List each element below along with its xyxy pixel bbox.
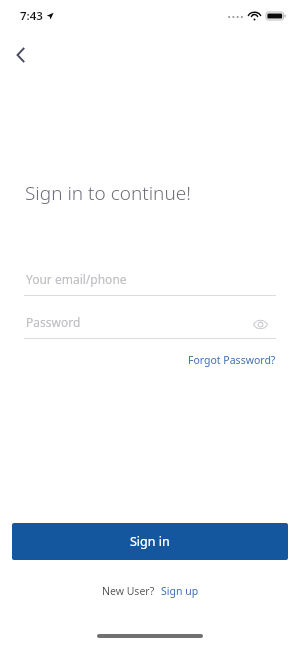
- button[interactable]: Back: [6, 40, 36, 70]
- staticText: 7:43: [20, 8, 43, 24]
- staticText: Sign in to continue!: [25, 180, 191, 206]
- button[interactable]: Sign up: [161, 584, 199, 598]
- button[interactable]: Password: [24, 309, 276, 339]
- staticText: Your email/phone: [26, 271, 127, 287]
- button[interactable]: Your email/phone: [24, 266, 276, 296]
- button[interactable]: Show password: [247, 311, 273, 337]
- staticText: Forgot Password?: [188, 353, 276, 367]
- staticText: Sign up: [161, 584, 199, 598]
- button[interactable]: Forgot Password?: [186, 351, 278, 369]
- staticText: Sign in: [130, 533, 170, 550]
- button[interactable]: Sign in: [12, 523, 288, 560]
- staticText: Password: [26, 314, 81, 330]
- staticText: New User?: [102, 584, 155, 598]
